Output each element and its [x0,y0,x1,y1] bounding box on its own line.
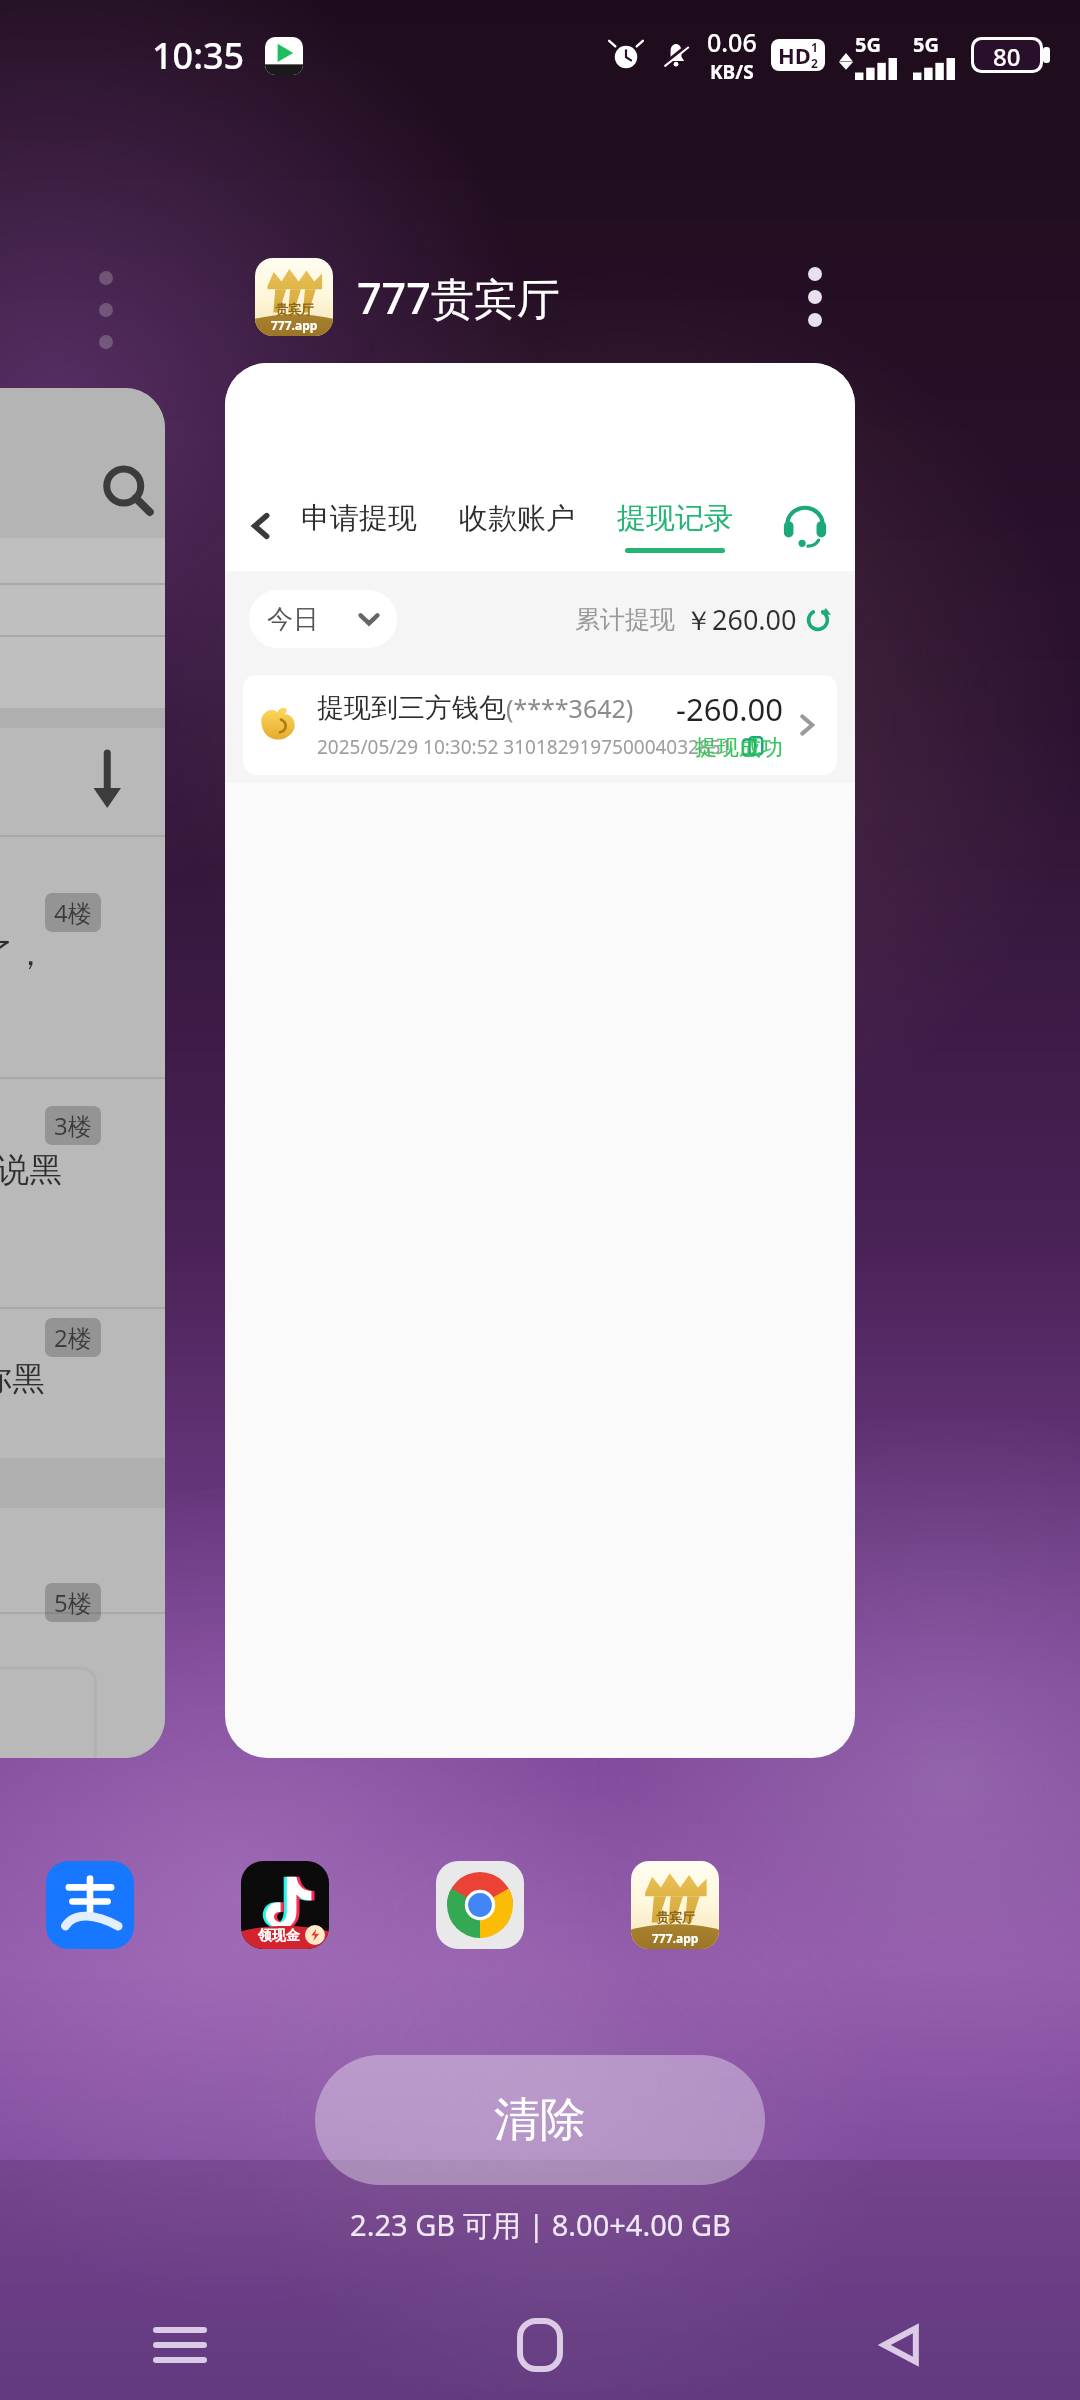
button[interactable]: Recents [0,2290,360,2400]
button[interactable]: 申请提现 [297,494,421,559]
staticText: 5G [913,31,939,58]
button[interactable]: Back [233,498,289,554]
staticText: 5楼 [54,1586,92,1619]
staticText: 打出来了， [0,933,47,975]
button[interactable]: Back [720,2290,1080,2400]
staticText: -260.00 [676,688,783,730]
staticText: 玩错了 说黑 [0,1146,63,1191]
button[interactable]: 清除 [315,2055,765,2185]
staticText: 今日 [267,603,319,636]
staticText: 累计提现 [575,604,675,635]
staticText: (****3642) [506,691,634,725]
staticText: 提现到三方钱包 [317,691,506,725]
button[interactable]: 提现记录 [613,494,737,559]
button[interactable]: Copy order id [740,734,766,760]
staticText: 10:35 [152,31,245,80]
button[interactable]: 今日 [249,590,397,648]
staticText: 2.23 GB 可用 | 8.00+4.00 GB [350,2205,731,2245]
staticText: KB/S [710,59,754,85]
staticText: 777.app [652,1930,699,1946]
staticText: 提现成功 [695,734,783,762]
button[interactable]: Customer service [773,494,837,558]
staticText: 2025/05/29 10:30:52 31018291975000403285… [317,734,732,760]
staticText: 2 [811,55,818,71]
staticText: 777.app [271,317,318,333]
staticText: 2楼 [54,1321,92,1354]
button[interactable]: More options [760,242,870,352]
staticText: 清除 [494,2091,586,2149]
staticText: ￥260.00 [685,601,797,638]
staticText: 领现金 [258,1927,300,1945]
staticText: 人不黑你黑 [0,1358,45,1400]
staticText: 申请提现 [301,500,417,537]
button[interactable]: App [44,1859,136,1951]
button[interactable]: App [239,1859,331,1951]
staticText: 5G [855,31,881,58]
staticText: 贵宾厅 [656,1909,695,1925]
staticText: 收款账户 [459,500,575,537]
button[interactable]: App [629,1859,721,1951]
staticText: 4楼 [54,896,92,929]
staticText: 贵宾厅 [275,301,314,317]
staticText: 80 [993,40,1021,70]
staticText: 1 [811,39,818,55]
staticText: HD [778,40,811,70]
staticText: 777贵宾厅 [357,268,560,327]
button[interactable]: Home [360,2290,720,2400]
staticText: 3楼 [54,1109,92,1142]
staticText: 提现记录 [617,500,733,537]
button[interactable]: 提现到三方钱包 [243,675,837,775]
staticText: 0.06 [707,25,757,59]
button[interactable]: 收款账户 [455,494,579,559]
button[interactable]: App [434,1859,526,1951]
